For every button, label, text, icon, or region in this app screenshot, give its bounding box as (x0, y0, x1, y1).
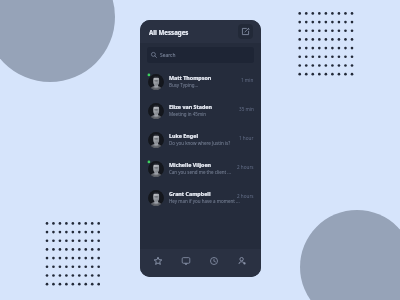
staticText: Michelle Viljoen (169, 161, 212, 168)
button[interactable]: Compose new message (238, 24, 253, 39)
button[interactable]: Grant Campbell (140, 183, 261, 212)
button[interactable]: Messages (172, 249, 200, 274)
staticText: Do you know where Justin is? (169, 140, 231, 146)
staticText: Meeting in 45min (169, 111, 207, 117)
staticText: 35 min (239, 106, 254, 112)
staticText: 2 hours (237, 193, 254, 199)
staticText: 2 hours (237, 164, 254, 170)
staticText: Luke Engel (169, 132, 198, 139)
staticText: All Messages (149, 28, 189, 36)
staticText: Search (160, 52, 176, 59)
staticText: 1 hour (239, 135, 254, 141)
button[interactable]: Contacts (228, 249, 256, 274)
button[interactable]: Michelle Viljoen (140, 154, 261, 183)
staticText: Busy Typing... (169, 82, 199, 88)
button[interactable]: Matt Thompson (140, 67, 261, 96)
button[interactable]: Luke Engel (140, 125, 261, 154)
staticText: Can you send me the client ... (169, 169, 231, 175)
staticText: Elize van Staden (169, 103, 213, 110)
button[interactable]: Elize van Staden (140, 96, 261, 125)
staticText: Grant Campbell (169, 190, 211, 197)
staticText: Hey man if you have a moment ... (169, 198, 240, 204)
button[interactable]: Favourites (144, 249, 172, 274)
button[interactable]: Search (147, 47, 254, 63)
button[interactable]: Recent (200, 249, 228, 274)
staticText: 1 min (241, 77, 254, 83)
staticText: Matt Thompson (169, 74, 212, 81)
